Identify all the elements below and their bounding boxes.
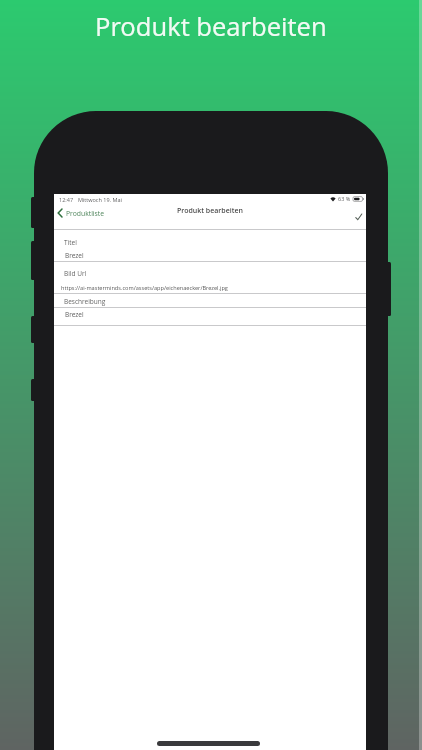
staticText: Beschreibung bbox=[64, 297, 106, 306]
staticText: Bild Url bbox=[64, 269, 87, 278]
staticText: Produkt bearbeiten bbox=[177, 206, 243, 216]
button[interactable]: Bild Url bbox=[64, 269, 87, 278]
staticText: Brezel bbox=[65, 310, 84, 319]
button[interactable]: Brezel bbox=[65, 251, 84, 260]
staticText: 63 % bbox=[338, 195, 351, 202]
staticText: 12:47 bbox=[59, 196, 74, 203]
button[interactable] bbox=[353, 211, 365, 223]
button[interactable]: Beschreibung bbox=[64, 297, 106, 306]
staticText: Titel bbox=[64, 238, 77, 247]
button[interactable]: Brezel bbox=[65, 310, 84, 319]
staticText: Brezel bbox=[65, 251, 84, 260]
staticText: https://ai-masterminds.com/assets/app/ei… bbox=[61, 284, 228, 292]
staticText: Produktliste bbox=[66, 209, 105, 218]
staticText: Mittwoch 19. Mai bbox=[78, 196, 122, 203]
button[interactable]: Produktliste bbox=[57, 208, 105, 218]
button[interactable]: https://ai-masterminds.com/assets/app/ei… bbox=[61, 284, 228, 292]
staticText: Produkt bearbeiten bbox=[95, 9, 327, 44]
button[interactable]: Titel bbox=[64, 238, 77, 247]
